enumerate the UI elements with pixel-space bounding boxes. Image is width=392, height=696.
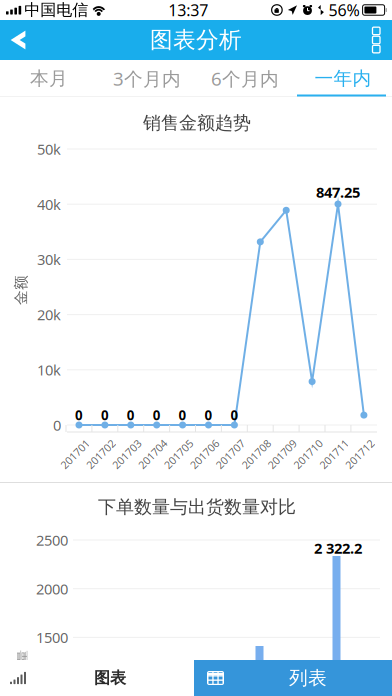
staticText: 201710 [290,447,326,461]
staticText: 201703 [109,447,145,461]
staticText: 一年内 [314,67,371,90]
staticText: 0 [179,406,187,424]
button[interactable]: 菜单 [340,20,392,60]
staticText: 0 [204,406,212,424]
staticText: 50k [37,139,61,159]
staticText: 40k [37,194,61,214]
staticText: 0 [75,406,83,424]
staticText: 中国电信 [24,0,88,20]
staticText: 0 [127,406,135,424]
button[interactable]: 列表 [194,660,392,696]
staticText: 图表 [94,668,126,688]
button[interactable]: 一年内 [294,60,392,97]
staticText: 0 [230,406,238,424]
button[interactable]: 6个月内 [196,60,294,97]
staticText: 数量 [10,654,34,669]
staticText: 56% [329,0,360,21]
button[interactable]: 图表 [0,660,194,696]
staticText: 201711 [316,447,352,461]
staticText: 图表分析 [150,26,242,54]
staticText: 金额 [6,281,36,299]
staticText: 2 322.2 [314,538,362,558]
staticText: 201705 [161,447,197,461]
staticText: 10k [37,360,61,380]
staticText: 201712 [342,447,378,461]
staticText: 201701 [57,447,93,461]
staticText: 1500 [36,628,68,647]
staticText: 0 [53,415,61,435]
staticText: 201702 [83,447,119,461]
staticText: 3个月内 [113,66,181,91]
button[interactable]: 本月 [0,60,98,97]
staticText: 列表 [289,666,327,689]
staticText: 6个月内 [211,66,279,91]
staticText: 13:37 [168,0,208,21]
staticText: 0 [101,406,109,424]
staticText: 下单数量与出货数量对比 [98,496,296,518]
staticText: 201706 [186,447,222,461]
staticText: 20k [37,305,61,324]
staticText: 0 [153,406,161,424]
button[interactable]: 返回 [0,20,50,60]
staticText: 201709 [264,447,300,461]
staticText: 201708 [238,447,274,461]
staticText: 201707 [212,447,248,461]
staticText: 2500 [36,530,68,550]
staticText: 847.25 [316,182,360,202]
button[interactable]: 3个月内 [98,60,196,97]
staticText: 201704 [135,447,171,461]
staticText: 30k [37,250,61,269]
staticText: 本月 [30,67,68,90]
staticText: 销售金额趋势 [143,112,251,134]
staticText: 2000 [36,579,68,598]
